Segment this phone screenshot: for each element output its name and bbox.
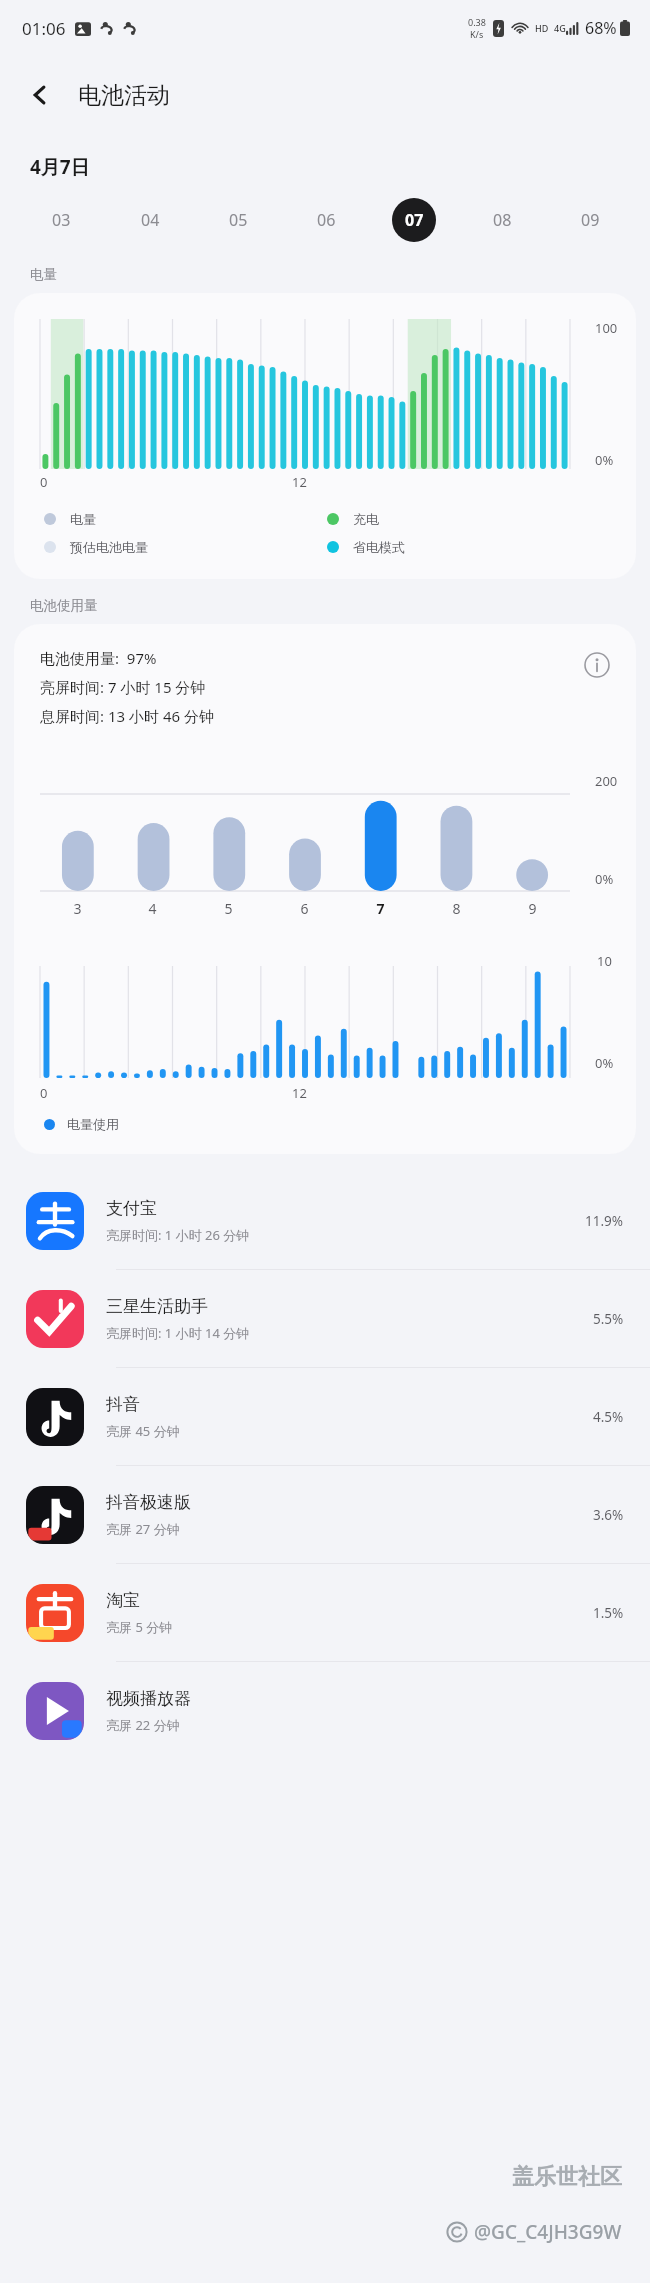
staticText: 04 (141, 209, 160, 231)
staticText: 06 (317, 209, 336, 231)
button[interactable]: 06 (282, 188, 370, 252)
staticText: 4G (554, 22, 566, 34)
staticText: 亮屏 45 分钟 (106, 1422, 180, 1440)
staticText: 5.5% (593, 1310, 624, 1328)
staticText: 12 (292, 473, 307, 491)
staticText: 01:06 (22, 17, 66, 40)
staticText: 12 (292, 1084, 307, 1102)
staticText: 亮屏时间: 1 小时 26 分钟 (106, 1226, 250, 1244)
staticText: 电池活动 (78, 81, 170, 110)
staticText: 4月7日 (30, 154, 90, 180)
staticText: 08 (493, 209, 512, 231)
staticText: 9 (528, 899, 537, 918)
staticText: 亮屏 27 分钟 (106, 1520, 180, 1538)
staticText: 7 (376, 899, 385, 918)
button[interactable]: 视频播放器 (0, 1662, 650, 1759)
button[interactable]: 03 (16, 188, 105, 252)
button[interactable]: 淘宝 (0, 1564, 650, 1661)
staticText: @GC_C4JH3G9W (474, 2219, 622, 2245)
staticText: 3 (73, 899, 82, 918)
button[interactable]: 04 (105, 188, 194, 252)
staticText: 0.38 (468, 16, 486, 28)
staticText: 视频播放器 (106, 1688, 191, 1709)
staticText: 亮屏 22 分钟 (106, 1716, 180, 1734)
staticText: 09 (581, 209, 600, 231)
staticText: 息屏时间: 13 小时 46 分钟 (40, 706, 214, 726)
staticText: 盖乐世社区 (512, 2163, 622, 2191)
staticText: 0 (40, 1084, 48, 1102)
staticText: 4.5% (593, 1408, 624, 1426)
staticText: 抖音 (106, 1394, 140, 1415)
staticText: 11.9% (585, 1212, 624, 1230)
staticText: HD (535, 22, 549, 34)
staticText: 淘宝 (106, 1590, 140, 1611)
staticText: 电池使用量: 97% (40, 648, 157, 668)
staticText: 10 (597, 952, 612, 970)
staticText: 亮屏时间: 7 小时 15 分钟 (40, 677, 206, 697)
staticText: 0 (40, 473, 48, 491)
staticText: 4 (148, 899, 157, 918)
button[interactable]: 100 (14, 293, 636, 579)
button[interactable]: 抖音极速版 (0, 1466, 650, 1563)
staticText: 亮屏时间: 1 小时 14 分钟 (106, 1324, 250, 1342)
button[interactable]: 三星生活助手 (0, 1270, 650, 1367)
staticText: 6 (300, 899, 309, 918)
button[interactable]: 07 (370, 188, 458, 252)
staticText: 07 (405, 209, 424, 231)
staticText: 电量使用 (67, 1116, 119, 1132)
staticText: 68% (585, 17, 617, 39)
staticText: 5 (224, 899, 233, 918)
staticText: 0% (595, 451, 614, 469)
staticText: K/s (470, 28, 484, 40)
staticText: 8 (452, 899, 461, 918)
staticText: 1.5% (593, 1604, 624, 1622)
button[interactable]: 支付宝 (0, 1172, 650, 1269)
staticText: 三星生活助手 (106, 1296, 208, 1317)
button[interactable]: 08 (458, 188, 546, 252)
staticText: 05 (229, 209, 248, 231)
staticText: 亮屏 5 分钟 (106, 1618, 173, 1636)
staticText: 电池使用量 (30, 597, 98, 614)
button[interactable]: Info (580, 648, 614, 682)
staticText: 03 (52, 209, 71, 231)
staticText: 抖音极速版 (106, 1492, 191, 1513)
staticText: 0% (595, 870, 614, 888)
button[interactable]: 抖音 (0, 1368, 650, 1465)
staticText: 预估电池电量 (70, 539, 148, 555)
staticText: 电量 (30, 266, 57, 283)
staticText: 3.6% (593, 1506, 624, 1524)
staticText: 200 (595, 772, 618, 790)
staticText: 电量 (70, 511, 96, 527)
staticText: 支付宝 (106, 1198, 157, 1219)
button[interactable]: 05 (194, 188, 282, 252)
staticText: 0% (595, 1054, 614, 1072)
button[interactable]: Back (16, 71, 64, 119)
staticText: 100 (595, 319, 618, 337)
staticText: 充电 (353, 511, 379, 527)
button[interactable]: 09 (546, 188, 634, 252)
staticText: 省电模式 (353, 539, 405, 555)
